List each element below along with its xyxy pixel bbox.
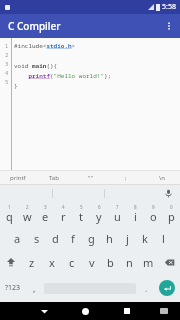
staticText: t [79,209,83,224]
staticText: e [42,209,49,224]
button[interactable]: 4 [54,202,72,226]
button[interactable]: Hide keyboard [24,302,65,320]
staticText: . [145,282,148,294]
staticText: void main(){ [14,62,58,70]
staticText: 6 [98,204,101,210]
staticText: r [61,209,66,224]
staticText: } [14,82,18,90]
staticText: 4 [62,204,65,210]
staticText: d [52,231,59,246]
staticText: v [89,255,95,270]
button[interactable]: Home [65,302,106,320]
staticText: "" [88,174,93,182]
button[interactable]: a [8,226,27,250]
button[interactable]: 3 [36,202,54,226]
button[interactable]: h [100,226,118,250]
staticText: ; [125,174,127,182]
staticText: 1 [5,42,9,49]
staticText: 3 [44,204,47,210]
button[interactable]: 2 [18,202,36,226]
staticText: 1 [8,204,11,210]
staticText: Tab [49,174,59,182]
button[interactable]: d [46,226,64,250]
button[interactable]: n [120,250,139,274]
button[interactable]: 6 [90,202,108,226]
button[interactable]: Switch keyboard [147,302,180,320]
staticText: 3 [5,60,9,67]
button[interactable]: Enter [154,274,180,302]
button[interactable]: s [27,226,46,250]
button[interactable]: b [101,250,120,274]
staticText: h [106,231,113,246]
button[interactable]: v [82,250,101,274]
button[interactable]: k [136,226,154,250]
staticText: w [23,209,32,224]
button[interactable]: \n [144,171,180,184]
staticText: s [34,231,40,246]
button[interactable]: ; [108,171,144,184]
button[interactable]: g [82,226,100,250]
staticText: o [150,209,157,224]
staticText: C Compiler [8,19,61,33]
button[interactable]: z [22,250,42,274]
button[interactable]: c [62,250,82,274]
button[interactable]: f [64,226,82,250]
button[interactable]: 0 [162,202,180,226]
button[interactable]: 9 [144,202,162,226]
staticText: m [143,255,154,270]
button[interactable]: 5 [72,202,90,226]
button[interactable]: Backspace [158,250,180,274]
staticText: c [69,255,75,270]
button[interactable]: x [42,250,62,274]
button[interactable]: l [154,226,172,250]
staticText: 5 [80,204,83,210]
button[interactable]: j [118,226,136,250]
button[interactable]: printf [0,171,36,184]
staticText: j [126,231,129,246]
button[interactable]: "" [72,171,108,184]
staticText: 9 [152,204,155,210]
button[interactable]: ?123 [0,274,26,302]
staticText: p [168,209,175,224]
button[interactable]: More options [158,14,180,38]
button[interactable]: Voice input [156,185,180,202]
staticText: \n [159,174,165,182]
button[interactable]: Tab [36,171,72,184]
staticText: 2 [5,51,9,58]
staticText: y [96,209,102,224]
button[interactable]: . [138,274,154,302]
staticText: x [49,255,55,270]
staticText: 7 [116,204,119,210]
staticText: printf [10,174,26,182]
staticText: b [107,255,114,270]
staticText: f [71,231,75,246]
button[interactable]: 8 [126,202,144,226]
button[interactable]: Recents [106,302,147,320]
staticText: 5:58 [162,2,176,12]
button[interactable]: m [139,250,158,274]
staticText: 2 [26,204,29,210]
staticText: , [33,282,36,294]
staticText: z [29,255,35,270]
staticText: ?123 [5,283,21,293]
staticText: #include<stdio.h> [14,42,76,50]
button[interactable]: 1 [0,202,18,226]
staticText: 4 [5,69,9,76]
staticText: 0 [170,204,173,210]
staticText: a [14,231,21,246]
staticText: g [88,231,95,246]
staticText: k [142,231,148,246]
staticText: i [134,209,137,224]
button[interactable]: 7 [108,202,126,226]
button[interactable]: Shift [0,250,22,274]
staticText: q [6,209,13,224]
button[interactable]: , [26,274,42,302]
staticText: n [126,255,133,270]
staticText: 5 [5,78,9,85]
staticText: printf("Hello world!"); [14,72,112,80]
staticText: 8 [134,204,137,210]
staticText: u [114,209,121,224]
staticText: l [162,231,165,246]
